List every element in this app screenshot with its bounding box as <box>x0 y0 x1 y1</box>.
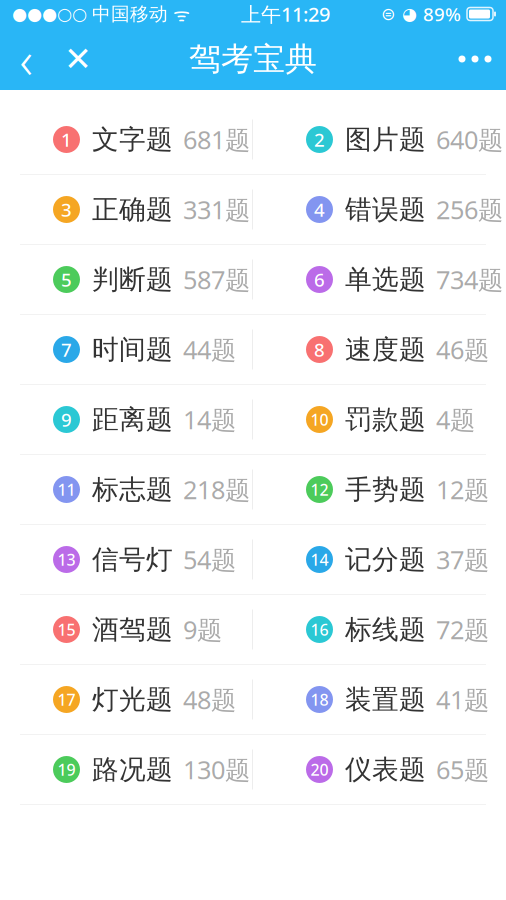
staticText: ✕ <box>64 40 92 78</box>
staticText: 驾考宝典 <box>189 39 317 79</box>
staticText: 19 <box>57 759 75 780</box>
button[interactable]: 更多 <box>444 28 506 90</box>
staticText: 11 <box>57 479 75 500</box>
staticText: 41题 <box>436 683 489 716</box>
button[interactable]: 10 <box>253 385 506 454</box>
staticText: 单选题 <box>345 263 426 296</box>
staticText: 7 <box>61 337 72 362</box>
staticText: 72题 <box>436 613 489 646</box>
staticText: 图片题 <box>345 123 426 156</box>
button[interactable]: 8 <box>253 315 506 384</box>
staticText: 仪表题 <box>345 753 426 786</box>
button[interactable]: 6 <box>253 245 506 314</box>
staticText: 记分题 <box>345 543 426 576</box>
staticText: 218题 <box>183 473 250 506</box>
staticText: 8 <box>314 337 325 362</box>
staticText: 331题 <box>183 193 250 226</box>
staticText: 距离题 <box>92 403 173 436</box>
staticText: 速度题 <box>345 333 426 366</box>
staticText: 罚款题 <box>345 403 426 436</box>
button[interactable]: 19 <box>0 735 253 804</box>
staticText: 6 <box>314 267 325 292</box>
button[interactable]: 5 <box>0 245 253 314</box>
staticText: ᯤ <box>173 2 190 26</box>
button[interactable]: 12 <box>253 455 506 524</box>
button[interactable]: 13 <box>0 525 253 594</box>
staticText: 路况题 <box>92 753 173 786</box>
staticText: 10 <box>310 409 328 430</box>
button[interactable]: 返回 <box>0 28 52 90</box>
staticText: 20 <box>310 759 328 780</box>
staticText: 酒驾题 <box>92 613 173 646</box>
staticText: ⊜ <box>381 4 396 24</box>
staticText: 判断题 <box>92 263 173 296</box>
button[interactable]: 14 <box>253 525 506 594</box>
staticText: 13 <box>57 549 75 570</box>
staticText: 130题 <box>183 753 250 786</box>
staticText: 12题 <box>436 473 489 506</box>
button[interactable]: 18 <box>253 665 506 734</box>
staticText: 标志题 <box>92 473 173 506</box>
staticText: 681题 <box>183 123 250 156</box>
button[interactable]: 2 <box>253 105 506 174</box>
staticText: 12 <box>310 479 328 500</box>
staticText: 3 <box>61 197 72 222</box>
staticText: 灯光题 <box>92 683 173 716</box>
staticText: 9 <box>61 407 72 432</box>
staticText: 256题 <box>436 193 503 226</box>
staticText: 89% <box>423 2 461 26</box>
staticText: ◕ <box>402 4 417 24</box>
staticText: 9题 <box>183 613 222 646</box>
staticText: 装置题 <box>345 683 426 716</box>
staticText: 4 <box>314 197 325 222</box>
button[interactable]: 17 <box>0 665 253 734</box>
staticText: 2 <box>314 127 325 152</box>
staticText: 37题 <box>436 543 489 576</box>
staticText: 5 <box>61 267 72 292</box>
staticText: 17 <box>57 689 75 710</box>
staticText: 48题 <box>183 683 236 716</box>
staticText: 上午11:29 <box>241 1 330 27</box>
staticText: 16 <box>310 619 328 640</box>
staticText: 15 <box>57 619 75 640</box>
staticText: 中国移动 <box>92 2 168 25</box>
button[interactable]: 1 <box>0 105 253 174</box>
staticText: 18 <box>310 689 328 710</box>
staticText: 587题 <box>183 263 250 296</box>
button[interactable]: 9 <box>0 385 253 454</box>
button[interactable]: 3 <box>0 175 253 244</box>
staticText: 时间题 <box>92 333 173 366</box>
staticText: 1 <box>61 127 72 152</box>
staticText: ‹ <box>19 25 32 93</box>
button[interactable]: 20 <box>253 735 506 804</box>
staticText: 手势题 <box>345 473 426 506</box>
staticText: 4题 <box>436 403 475 436</box>
staticText: 正确题 <box>92 193 173 226</box>
staticText: 54题 <box>183 543 236 576</box>
staticText: 44题 <box>183 333 236 366</box>
button[interactable]: 7 <box>0 315 253 384</box>
staticText: 734题 <box>436 263 503 296</box>
button[interactable]: 关闭 <box>52 28 104 90</box>
staticText: ●●●○○ <box>12 4 87 24</box>
button[interactable]: 16 <box>253 595 506 664</box>
staticText: 错误题 <box>345 193 426 226</box>
staticText: 14题 <box>183 403 236 436</box>
staticText: 标线题 <box>345 613 426 646</box>
staticText: 65题 <box>436 753 489 786</box>
staticText: 文字题 <box>92 123 173 156</box>
staticText: 640题 <box>436 123 503 156</box>
button[interactable]: 15 <box>0 595 253 664</box>
staticText: 14 <box>310 549 328 570</box>
button[interactable]: 11 <box>0 455 253 524</box>
button[interactable]: 4 <box>253 175 506 244</box>
staticText: 信号灯 <box>92 543 173 576</box>
staticText: 46题 <box>436 333 489 366</box>
